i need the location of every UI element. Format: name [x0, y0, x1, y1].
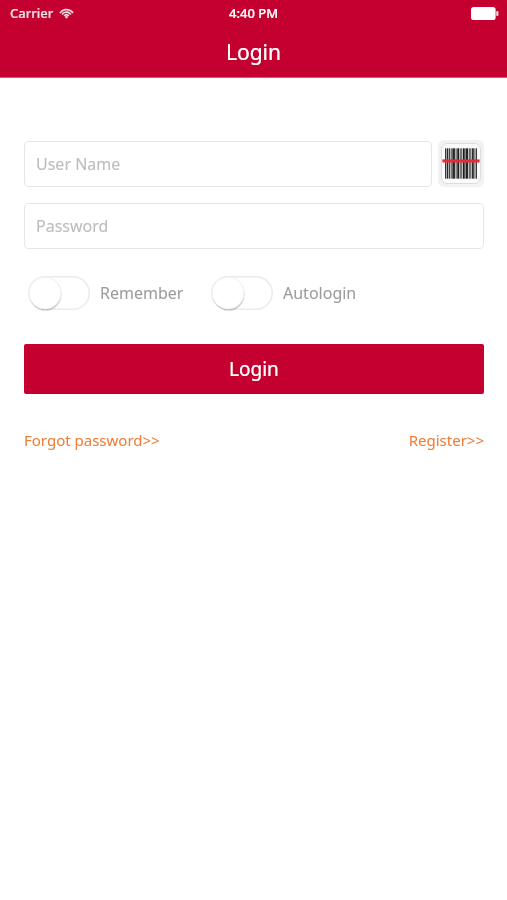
staticText: Forgot password>>	[24, 430, 160, 450]
button[interactable]: Autologin	[211, 276, 357, 310]
staticText: Carrier	[10, 4, 54, 22]
button[interactable]: Forgot password>>	[24, 426, 160, 454]
staticText: Register>>	[408, 430, 484, 450]
staticText: Password	[36, 215, 109, 237]
button[interactable]: User Name	[24, 141, 432, 187]
staticText: Autologin	[283, 282, 357, 304]
button[interactable]: Remember	[28, 276, 184, 310]
staticText: Login	[226, 38, 282, 67]
staticText: Remember	[100, 282, 184, 304]
staticText: Login	[229, 356, 279, 382]
button[interactable]: Login	[24, 344, 484, 394]
staticText: 4:40 PM	[229, 4, 279, 22]
button[interactable]: Register>>	[366, 426, 484, 454]
staticText: User Name	[36, 153, 121, 175]
button[interactable]: Password	[24, 203, 484, 249]
button[interactable]: Scan barcode	[438, 140, 484, 187]
